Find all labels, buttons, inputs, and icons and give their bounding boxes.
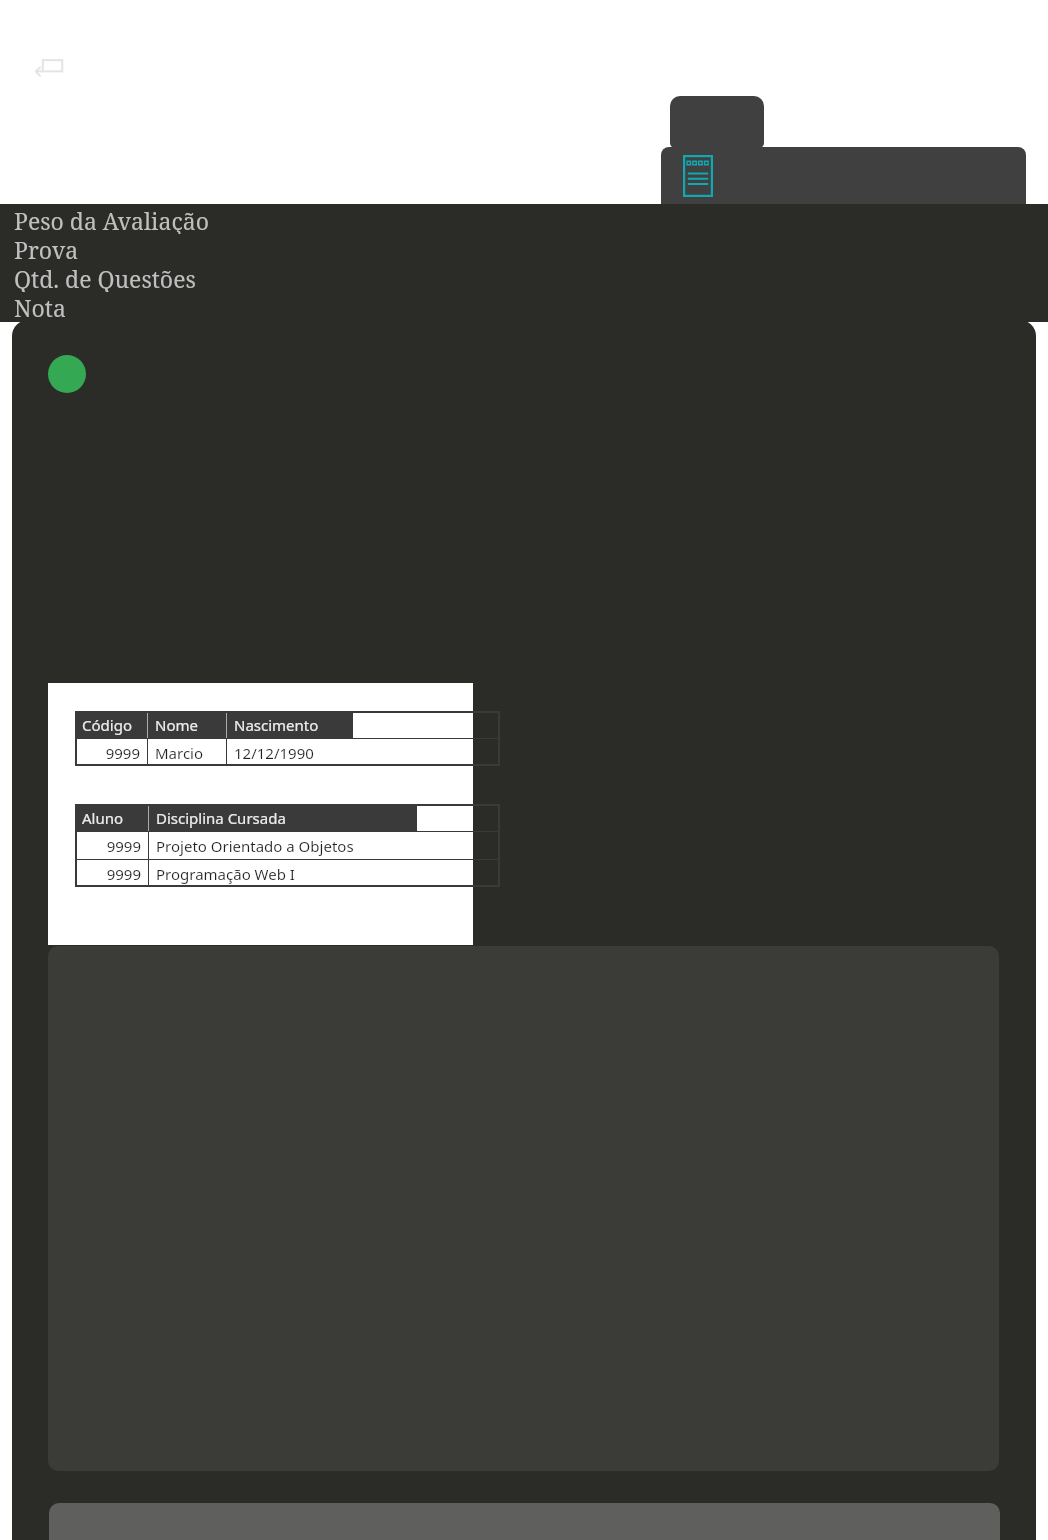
staticText: Peso da Avaliação: [14, 205, 209, 234]
button[interactable]: Prova: [14, 234, 79, 263]
staticText: Nascimento: [234, 715, 319, 735]
staticText: Aluno: [82, 808, 124, 828]
button[interactable]: Document list: [683, 155, 713, 197]
button[interactable]: Qtd. de Questões: [14, 263, 196, 292]
staticText: Marcio: [155, 743, 204, 763]
staticText: Programação Web I: [156, 864, 295, 884]
staticText: 9999: [106, 836, 141, 856]
staticText: Disciplina Cursada: [156, 808, 286, 828]
button[interactable]: Peso da Avaliação: [14, 205, 209, 234]
staticText: 9999: [105, 743, 140, 763]
button[interactable]: Tab: [670, 96, 764, 148]
staticText: Nome: [155, 715, 198, 735]
button[interactable]: Back: [32, 54, 68, 82]
staticText: Projeto Orientado a Objetos: [156, 836, 354, 856]
button[interactable]: Status: [48, 355, 86, 393]
staticText: 12/12/1990: [234, 743, 314, 763]
staticText: 9999: [106, 864, 141, 884]
staticText: Prova: [14, 234, 79, 263]
button[interactable]: Nota: [14, 292, 66, 321]
staticText: Código: [82, 715, 132, 735]
staticText: Qtd. de Questões: [14, 263, 196, 292]
staticText: Nota: [14, 292, 66, 321]
